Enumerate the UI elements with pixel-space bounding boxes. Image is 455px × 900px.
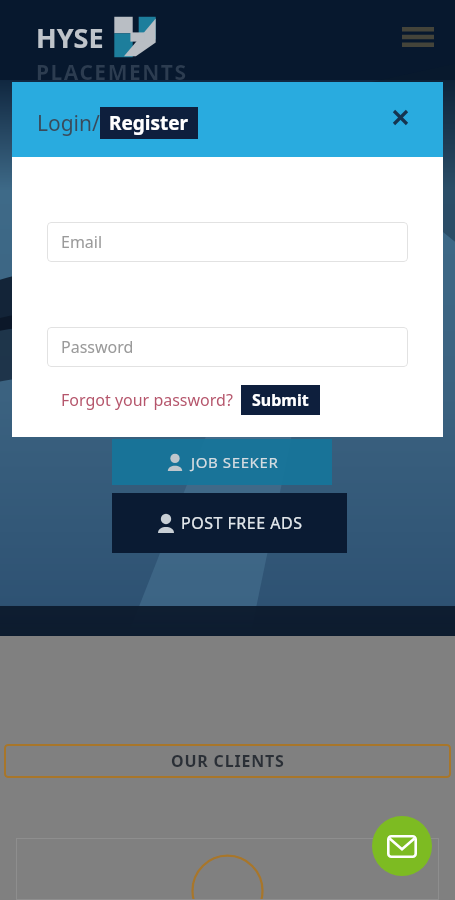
button[interactable]: Email bbox=[47, 222, 408, 262]
staticText: POST FREE ADS bbox=[181, 512, 303, 534]
staticText: JOB SEEKER bbox=[191, 452, 279, 472]
staticText: Login/ bbox=[37, 109, 100, 138]
staticText: Forgot your password? bbox=[61, 389, 233, 411]
button[interactable]: POST FREE ADS bbox=[112, 493, 347, 553]
button[interactable]: Menu bbox=[396, 18, 440, 56]
button[interactable]: OUR CLIENTS bbox=[4, 744, 451, 778]
button[interactable]: Login/ bbox=[37, 107, 198, 139]
staticText: Register bbox=[109, 110, 189, 136]
staticText: Email bbox=[61, 231, 103, 253]
staticText: Password bbox=[61, 336, 134, 358]
button[interactable]: JOB SEEKER bbox=[112, 439, 332, 485]
button[interactable]: Submit bbox=[241, 385, 320, 415]
staticText: PLACEMENTS bbox=[36, 58, 188, 87]
button[interactable]: Password bbox=[47, 327, 408, 367]
staticText: HYSE bbox=[36, 19, 104, 56]
staticText: OUR CLIENTS bbox=[171, 750, 285, 772]
button[interactable]: Forgot your password? bbox=[61, 389, 233, 411]
staticText: Submit bbox=[252, 389, 309, 411]
button[interactable]: Close bbox=[383, 100, 417, 134]
button[interactable]: Contact us by email bbox=[372, 816, 432, 876]
